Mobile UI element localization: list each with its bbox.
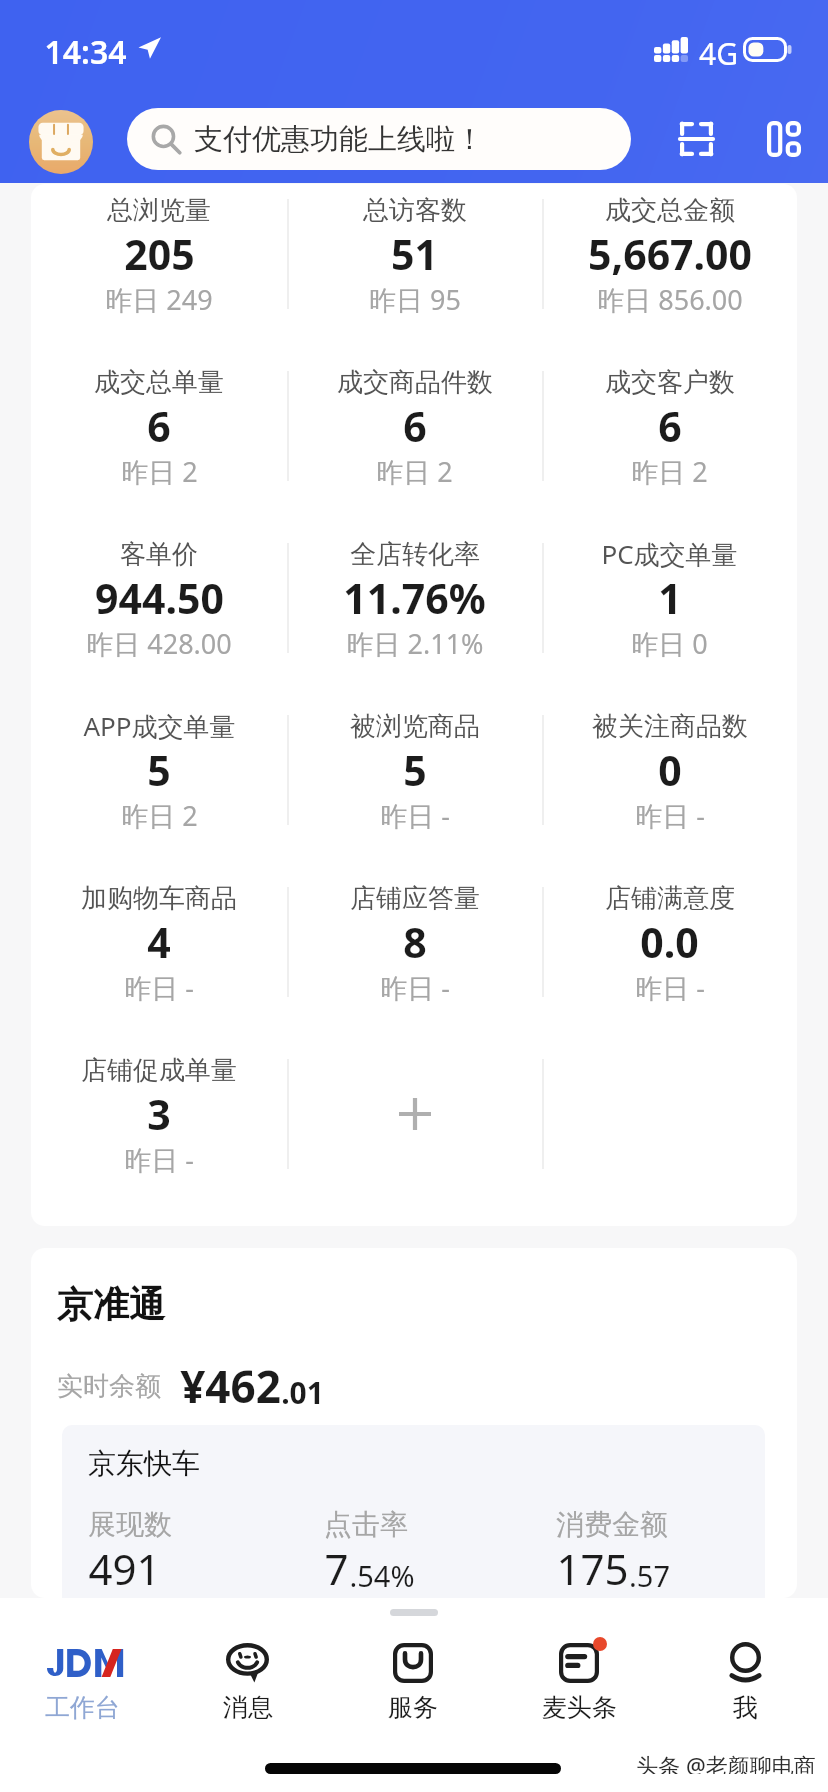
- staticText: 0: [658, 742, 682, 794]
- staticText: 服务: [388, 1692, 438, 1723]
- button[interactable]: Scan QR code: [668, 111, 724, 167]
- button[interactable]: 店铺促成单量: [31, 1044, 287, 1216]
- staticText: 51: [391, 226, 438, 278]
- staticText: ¥462: [180, 1356, 281, 1416]
- staticText: 11.76%: [343, 570, 486, 622]
- button[interactable]: 工作台: [0, 1598, 165, 1738]
- button[interactable]: 我: [662, 1598, 828, 1738]
- staticText: 3: [147, 1086, 171, 1138]
- staticText: 被关注商品数: [592, 710, 748, 743]
- button[interactable]: 全店转化率: [287, 528, 542, 700]
- button[interactable]: APP成交单量: [31, 700, 287, 872]
- staticText: 14:34: [44, 30, 127, 68]
- button[interactable]: 服务: [330, 1598, 496, 1738]
- button[interactable]: 成交客户数: [542, 356, 797, 528]
- button[interactable]: 支付优惠功能上线啦！: [127, 108, 631, 170]
- staticText: 5,667.00: [588, 226, 752, 278]
- staticText: 昨日 95: [369, 281, 461, 318]
- staticText: 京东快车: [88, 1446, 200, 1481]
- button[interactable]: 消息: [165, 1598, 330, 1738]
- button[interactable]: Shop profile: [29, 110, 93, 174]
- staticText: 店铺应答量: [350, 882, 480, 915]
- staticText: 客单价: [120, 538, 198, 571]
- staticText: 昨日 -: [635, 797, 705, 834]
- staticText: 昨日 2: [376, 453, 453, 490]
- staticText: 944.50: [95, 570, 224, 622]
- staticText: 昨日 2: [121, 797, 198, 834]
- staticText: .01: [281, 1372, 324, 1413]
- button[interactable]: 麦头条: [496, 1598, 662, 1738]
- button[interactable]: 成交商品件数: [287, 356, 542, 528]
- staticText: 昨日 -: [635, 969, 705, 1006]
- staticText: 0.0: [640, 914, 699, 966]
- staticText: 昨日 -: [124, 969, 194, 1006]
- button[interactable]: 总访客数: [287, 184, 542, 356]
- staticText: 1: [658, 570, 682, 622]
- staticText: 6: [658, 398, 682, 450]
- staticText: 全店转化率: [350, 538, 480, 571]
- button[interactable]: 店铺满意度: [542, 872, 797, 1044]
- staticText: 工作台: [45, 1692, 120, 1723]
- staticText: 被浏览商品: [350, 710, 480, 743]
- button[interactable]: PC成交单量: [542, 528, 797, 700]
- button[interactable]: 点击率: [324, 1500, 408, 1548]
- button[interactable]: 成交总金额: [542, 184, 797, 356]
- button[interactable]: 总浏览量: [31, 184, 287, 356]
- staticText: 我: [733, 1692, 758, 1723]
- staticText: 昨日 428.00: [86, 625, 232, 662]
- staticText: .54%: [349, 1556, 415, 1595]
- staticText: 昨日 2.11%: [346, 625, 484, 662]
- staticText: 昨日 2: [121, 453, 198, 490]
- button[interactable]: 消费金额: [556, 1500, 668, 1548]
- staticText: 成交总单量: [94, 366, 224, 399]
- staticText: 总访客数: [363, 194, 467, 227]
- staticText: 消费金额: [556, 1507, 668, 1542]
- staticText: 昨日 0: [631, 625, 708, 662]
- staticText: 店铺满意度: [605, 882, 735, 915]
- button[interactable]: 成交总单量: [31, 356, 287, 528]
- button[interactable]: Add metric: [287, 1044, 542, 1216]
- staticText: 175: [556, 1540, 629, 1597]
- staticText: 店铺促成单量: [81, 1054, 237, 1087]
- staticText: 4: [147, 914, 171, 966]
- staticText: 昨日 2: [631, 453, 708, 490]
- button[interactable]: All apps: [756, 111, 812, 167]
- staticText: 昨日 856.00: [597, 281, 743, 318]
- staticText: 6: [403, 398, 427, 450]
- staticText: 支付优惠功能上线啦！: [194, 121, 484, 158]
- staticText: 点击率: [324, 1507, 408, 1542]
- staticText: 展现数: [88, 1507, 172, 1542]
- staticText: 5: [403, 742, 427, 794]
- staticText: 491: [88, 1540, 161, 1597]
- staticText: PC成交单量: [601, 536, 738, 572]
- staticText: 昨日 249: [105, 281, 213, 318]
- button[interactable]: 展现数: [88, 1500, 172, 1548]
- staticText: 昨日 -: [380, 969, 450, 1006]
- staticText: 4G: [699, 33, 738, 65]
- staticText: 麦头条: [542, 1692, 617, 1723]
- staticText: 加购物车商品: [81, 882, 237, 915]
- staticText: .57: [629, 1556, 670, 1595]
- button[interactable]: 店铺应答量: [287, 872, 542, 1044]
- button[interactable]: 被浏览商品: [287, 700, 542, 872]
- staticText: 实时余额: [57, 1370, 161, 1403]
- staticText: 京准通: [57, 1282, 165, 1327]
- staticText: 6: [147, 398, 171, 450]
- staticText: 205: [124, 226, 195, 278]
- staticText: 昨日 -: [380, 797, 450, 834]
- staticText: 8: [403, 914, 427, 966]
- staticText: APP成交单量: [83, 708, 236, 744]
- staticText: 总浏览量: [107, 194, 211, 227]
- button[interactable]: 加购物车商品: [31, 872, 287, 1044]
- staticText: 成交客户数: [605, 366, 735, 399]
- staticText: 消息: [223, 1692, 273, 1723]
- staticText: 成交商品件数: [337, 366, 493, 399]
- staticText: 7: [324, 1540, 349, 1597]
- staticText: 成交总金额: [605, 194, 735, 227]
- staticText: 昨日 -: [124, 1141, 194, 1178]
- staticText: 5: [147, 742, 171, 794]
- button[interactable]: 被关注商品数: [542, 700, 797, 872]
- button[interactable]: 客单价: [31, 528, 287, 700]
- staticText: 头条 @老颜聊电商: [636, 1750, 816, 1774]
